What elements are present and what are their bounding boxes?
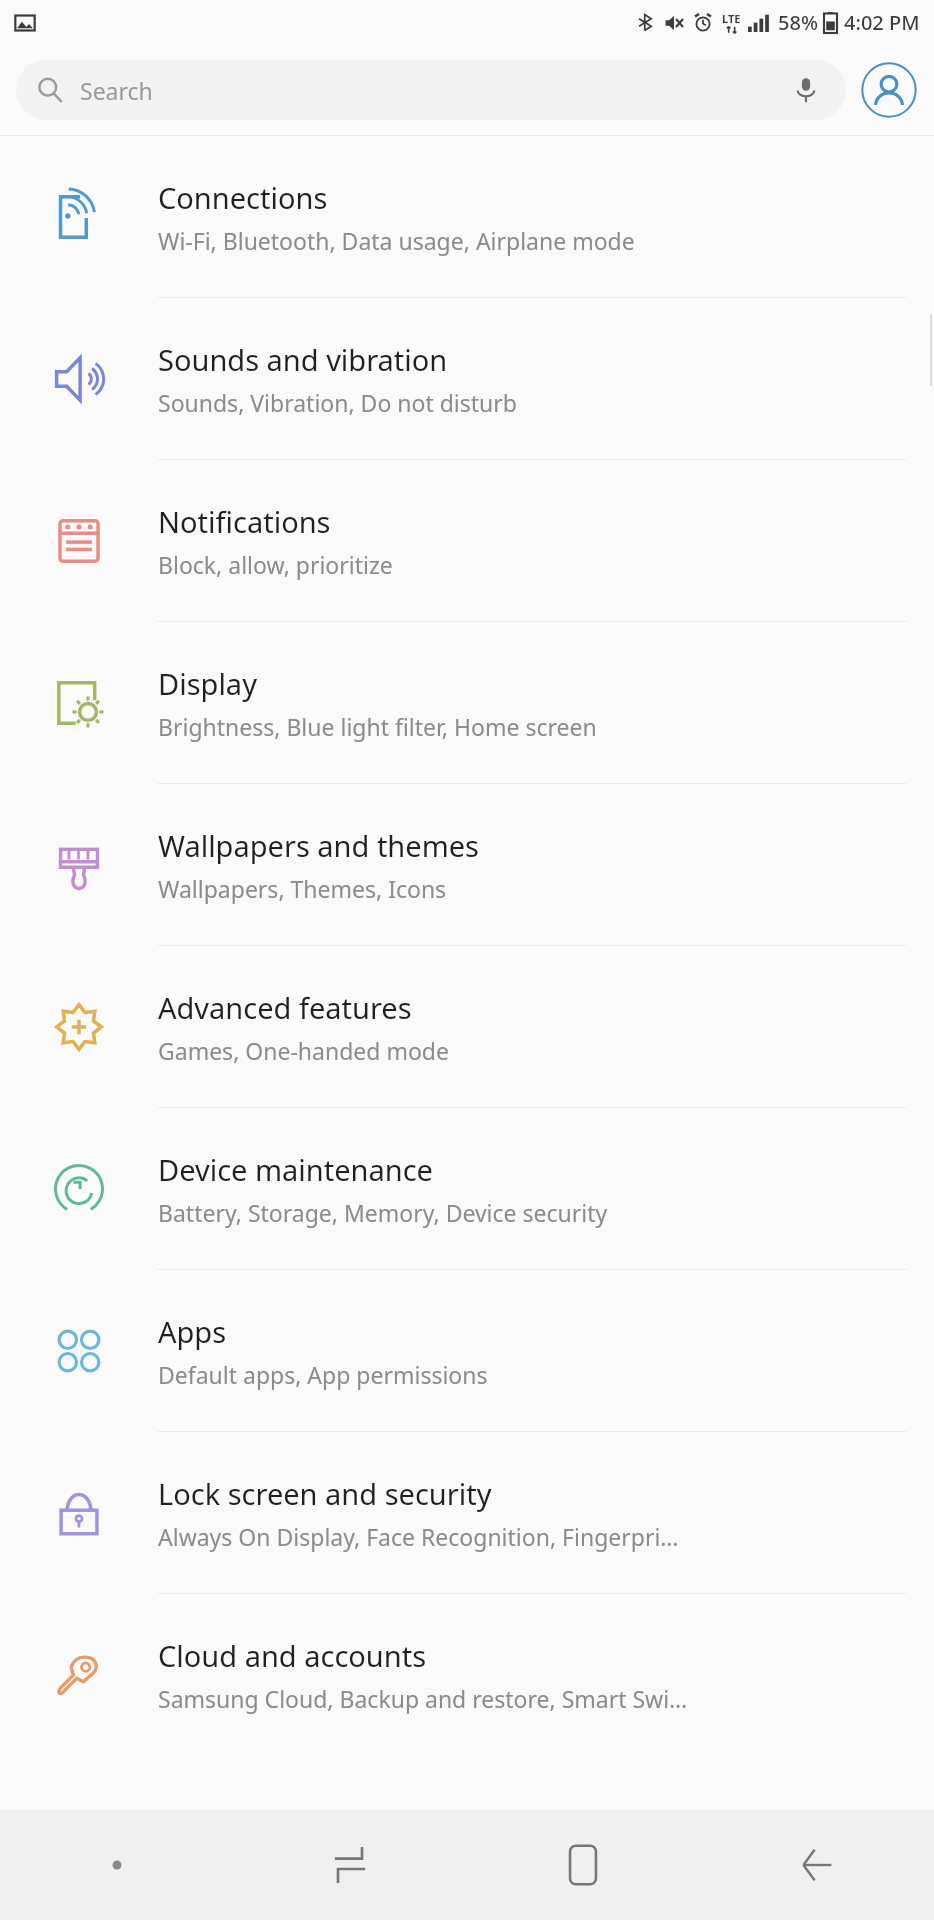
button[interactable]: Cloud and accounts (0, 1594, 934, 1755)
staticText: Brightness, Blue light filter, Home scre… (158, 711, 597, 742)
button[interactable]: Device maintenance (0, 1108, 934, 1269)
staticText: Block, allow, prioritize (158, 549, 393, 580)
button[interactable]: Connections (0, 136, 934, 297)
button[interactable]: Menu indicator (0, 1810, 233, 1920)
staticText: Wi-Fi, Bluetooth, Data usage, Airplane m… (158, 225, 635, 256)
button[interactable]: Back (700, 1810, 934, 1920)
button[interactable]: Home (466, 1810, 700, 1920)
staticText: Samsung Cloud, Backup and restore, Smart… (158, 1683, 688, 1714)
button[interactable]: Notifications (0, 460, 934, 621)
staticText: Apps (158, 1312, 227, 1351)
staticText: LTE (722, 11, 741, 26)
staticText: 4:02 PM (844, 9, 920, 36)
staticText: Battery, Storage, Memory, Device securit… (158, 1197, 608, 1228)
staticText: Device maintenance (158, 1150, 433, 1189)
button[interactable]: Wallpapers and themes (0, 784, 934, 945)
staticText: Cloud and accounts (158, 1636, 427, 1675)
staticText: Lock screen and security (158, 1474, 492, 1513)
button[interactable]: Advanced features (0, 946, 934, 1107)
button[interactable]: Apps (0, 1270, 934, 1431)
button[interactable]: Display (0, 622, 934, 783)
staticText: Advanced features (158, 988, 412, 1027)
button[interactable]: Account (860, 61, 918, 119)
staticText: Display (158, 664, 257, 703)
staticText: Search (80, 75, 153, 106)
staticText: Always On Display, Face Recognition, Fin… (158, 1521, 679, 1552)
button[interactable]: Voice search (786, 70, 826, 110)
staticText: Sounds, Vibration, Do not disturb (158, 387, 517, 418)
button[interactable]: Sounds and vibration (0, 298, 934, 459)
staticText: Connections (158, 178, 328, 217)
staticText: Games, One-handed mode (158, 1035, 449, 1066)
button[interactable]: Search (16, 60, 846, 120)
button[interactable]: Lock screen and security (0, 1432, 934, 1593)
staticText: Wallpapers, Themes, Icons (158, 873, 447, 904)
staticText: Default apps, App permissions (158, 1359, 488, 1390)
button[interactable]: Recent apps (233, 1810, 466, 1920)
staticText: Notifications (158, 502, 331, 541)
staticText: Sounds and vibration (158, 340, 448, 379)
staticText: Wallpapers and themes (158, 826, 480, 865)
staticText: 58% (778, 9, 818, 36)
